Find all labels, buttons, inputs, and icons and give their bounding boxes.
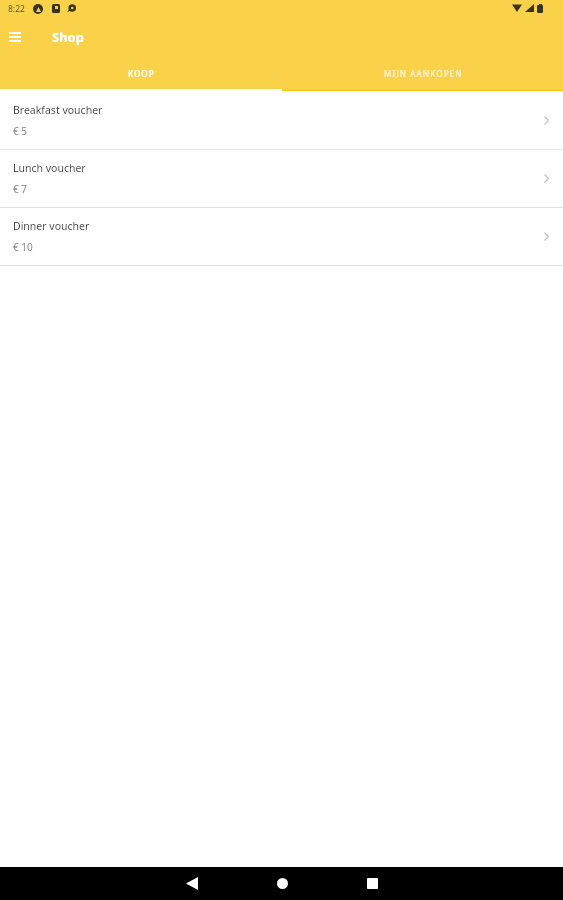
staticText: Dinner voucher [13,219,90,233]
button[interactable]: Recent apps [356,867,389,900]
staticText: KOOP [128,68,155,79]
button[interactable]: MIJN AANKOPEN [281,60,563,91]
staticText: € 7 [13,182,28,196]
button[interactable]: Breakfast voucher [0,91,563,149]
staticText: € 5 [13,124,28,138]
button[interactable]: Dinner voucher [0,208,563,265]
button[interactable]: Back [175,867,208,900]
staticText: Shop [52,28,84,46]
button[interactable]: Lunch voucher [0,150,563,207]
button[interactable]: Home [266,867,299,900]
staticText: MIJN AANKOPEN [384,68,463,79]
staticText: € 10 [13,240,33,254]
staticText: 8:22 [8,3,25,15]
button[interactable]: Open navigation menu [1,23,28,50]
staticText: Breakfast voucher [13,103,103,117]
button[interactable]: KOOP [0,60,281,91]
staticText: Lunch voucher [13,161,86,175]
